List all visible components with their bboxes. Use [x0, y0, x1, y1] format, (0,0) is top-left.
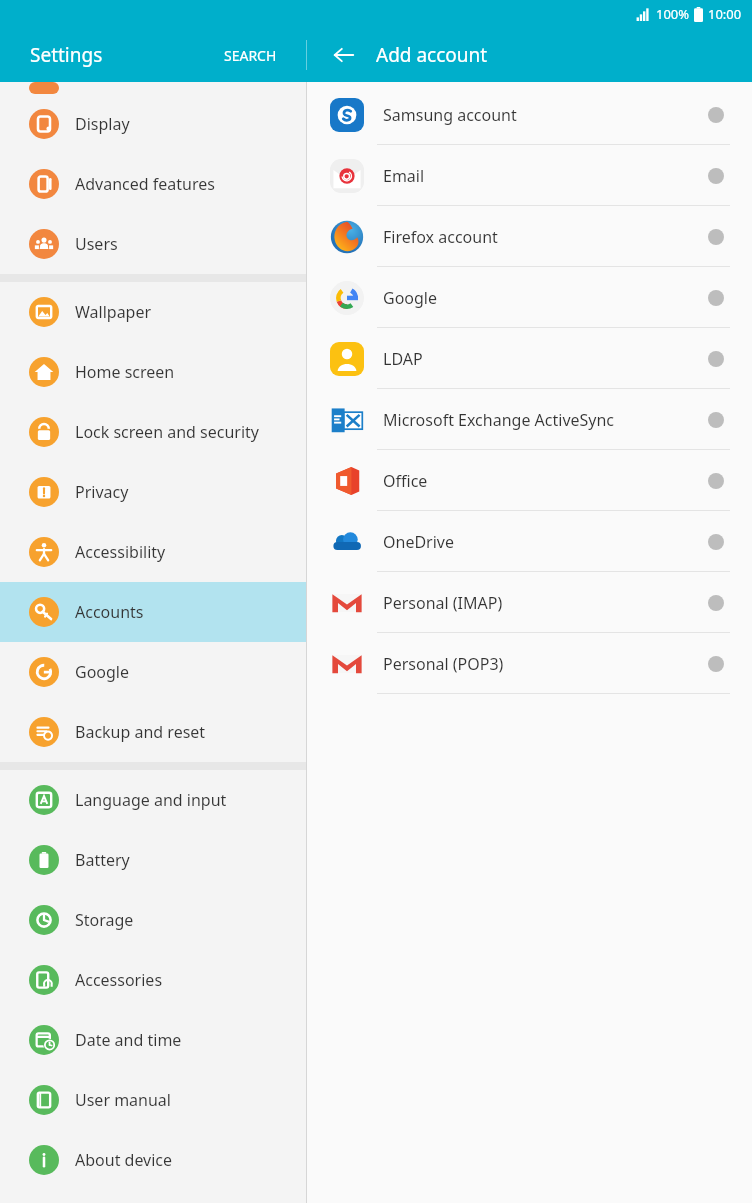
staticText: Wallpaper	[75, 301, 152, 323]
button[interactable]: Google	[307, 267, 752, 328]
button[interactable]: OneDrive	[307, 511, 752, 572]
staticText: Users	[75, 233, 118, 255]
staticText: Office	[383, 470, 708, 492]
staticText: Firefox account	[383, 226, 708, 248]
button[interactable]: Accessories	[0, 950, 307, 1010]
button[interactable]: Microsoft Exchange ActiveSync	[307, 389, 752, 450]
staticText: About device	[75, 1149, 173, 1171]
button[interactable]: Privacy	[0, 462, 307, 522]
staticText: Google	[75, 661, 130, 683]
staticText: Language and input	[75, 789, 227, 811]
button[interactable]: Date and time	[0, 1010, 307, 1070]
staticText: Add account	[376, 42, 488, 68]
button[interactable]: Office	[307, 450, 752, 511]
staticText: LDAP	[383, 348, 708, 370]
staticText: Privacy	[75, 481, 129, 503]
staticText: OneDrive	[383, 531, 708, 553]
staticText: User manual	[75, 1089, 171, 1111]
button[interactable]: Accounts	[0, 582, 307, 642]
button[interactable]: Wallpaper	[0, 282, 307, 342]
staticText: Display	[75, 113, 130, 135]
button[interactable]: Personal (POP3)	[307, 633, 752, 694]
button[interactable]: Accessibility	[0, 522, 307, 582]
staticText: 100%	[656, 5, 690, 23]
staticText: Email	[383, 165, 708, 187]
button[interactable]: Samsung account	[307, 84, 752, 145]
staticText: Google	[383, 287, 708, 309]
button[interactable]: Personal (IMAP)	[307, 572, 752, 633]
staticText: 10:00	[708, 5, 742, 23]
staticText: Settings	[30, 42, 103, 68]
staticText: Date and time	[75, 1029, 182, 1051]
staticText: Lock screen and security	[75, 421, 259, 443]
button[interactable]: Back	[322, 33, 366, 77]
button[interactable]: SEARCH	[216, 38, 285, 73]
button[interactable]: User manual	[0, 1070, 307, 1130]
staticText: Personal (IMAP)	[383, 592, 708, 614]
staticText: Accessibility	[75, 541, 166, 563]
staticText: Accounts	[75, 601, 144, 623]
button[interactable]: Google	[0, 642, 307, 702]
staticText: SEARCH	[224, 46, 277, 65]
button[interactable]: Advanced features	[0, 154, 307, 214]
button[interactable]: LDAP	[307, 328, 752, 389]
staticText: Microsoft Exchange ActiveSync	[383, 409, 708, 431]
staticText: Home screen	[75, 361, 175, 383]
button[interactable]: Firefox account	[307, 206, 752, 267]
staticText: Advanced features	[75, 173, 215, 195]
staticText: Storage	[75, 909, 134, 931]
button[interactable]: Lock screen and security	[0, 402, 307, 462]
staticText: Accessories	[75, 969, 163, 991]
staticText: Backup and reset	[75, 721, 206, 743]
button[interactable]: About device	[0, 1130, 307, 1190]
button[interactable]: Display	[0, 94, 307, 154]
staticText: Samsung account	[383, 104, 708, 126]
staticText: Personal (POP3)	[383, 653, 708, 675]
staticText: Battery	[75, 849, 130, 871]
button[interactable]: Users	[0, 214, 307, 274]
button[interactable]: Battery	[0, 830, 307, 890]
button[interactable]: Home screen	[0, 342, 307, 402]
button[interactable]: Email	[307, 145, 752, 206]
button[interactable]: Storage	[0, 890, 307, 950]
button[interactable]: Backup and reset	[0, 702, 307, 762]
button[interactable]: Language and input	[0, 770, 307, 830]
